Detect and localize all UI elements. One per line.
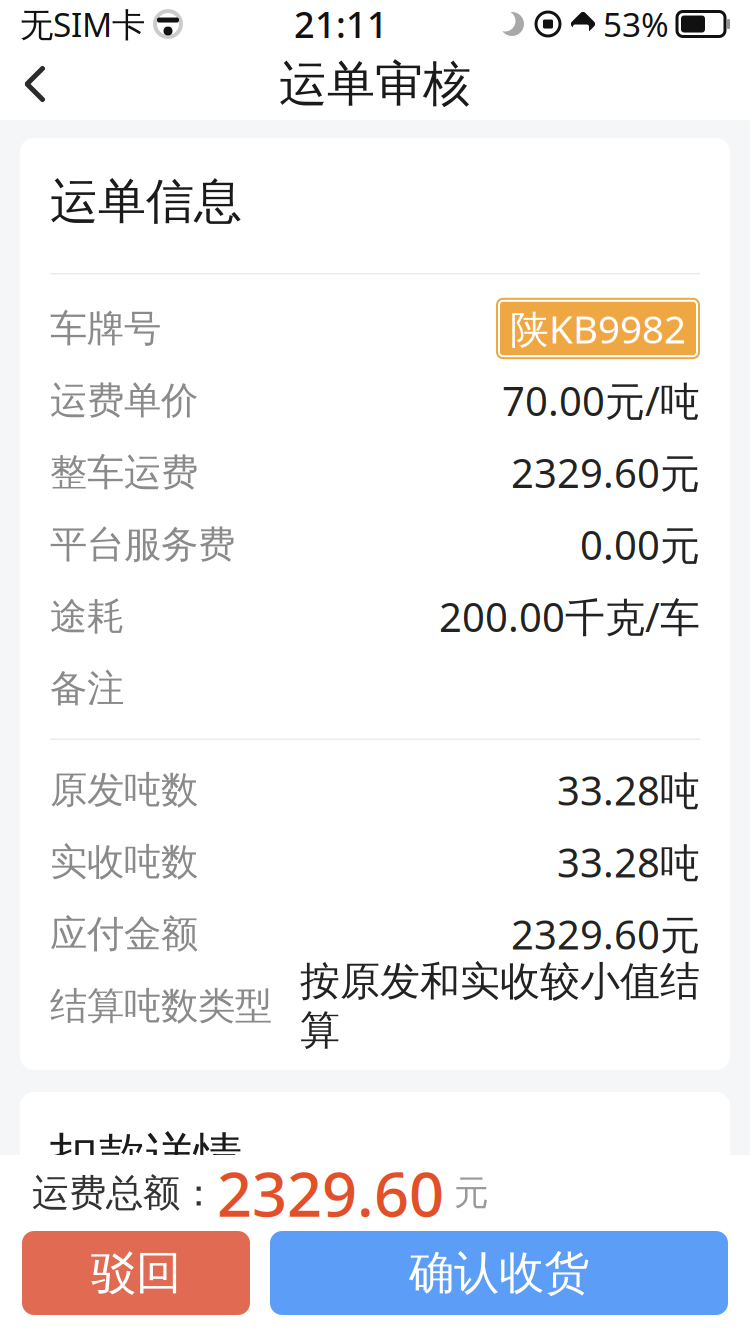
staticText: 2329.60元 <box>511 907 700 960</box>
staticText: 2329.60元 <box>511 446 700 499</box>
staticText: 车牌号 <box>50 305 161 351</box>
staticText: 21:11 <box>294 0 388 48</box>
staticText: 整车运费 <box>50 449 198 495</box>
staticText: 33.28吨 <box>557 763 700 816</box>
staticText <box>670 9 676 39</box>
staticText: 按原发和实收较小值结算 <box>300 957 700 1055</box>
staticText: 33.28吨 <box>557 835 700 888</box>
staticText: 运费单价 <box>50 377 198 423</box>
staticText: 运单信息 <box>50 172 242 231</box>
staticText: 元 <box>444 1172 489 1214</box>
button[interactable]: 确认收货 <box>270 1231 728 1315</box>
staticText: 200.00千克/车 <box>439 590 700 643</box>
staticText: 70.00元/吨 <box>502 374 700 427</box>
staticText: 53% <box>603 2 669 46</box>
staticText: 驳回 <box>91 1245 181 1301</box>
staticText: 应付金额 <box>50 911 198 957</box>
staticText: 无SIM卡 <box>20 2 145 46</box>
staticText: 2329.60 <box>217 1152 444 1234</box>
staticText: 平台服务费 <box>50 521 235 567</box>
staticText: 运费总额： <box>32 1170 217 1216</box>
staticText: 陕KB9982 <box>510 303 686 354</box>
button[interactable]: 驳回 <box>22 1231 250 1315</box>
staticText: 途耗 <box>50 593 124 639</box>
staticText: 扣款详情 <box>50 1126 242 1185</box>
staticText: 确认收货 <box>409 1245 589 1301</box>
staticText: 运单审核 <box>279 54 471 113</box>
staticText: 实收吨数 <box>50 839 198 885</box>
staticText: 备注 <box>50 665 124 711</box>
staticText: 0.00元 <box>580 518 700 571</box>
staticText: 结算吨数类型 <box>50 983 272 1029</box>
staticText: 原发吨数 <box>50 767 198 813</box>
button[interactable]: 返回 <box>0 48 70 120</box>
